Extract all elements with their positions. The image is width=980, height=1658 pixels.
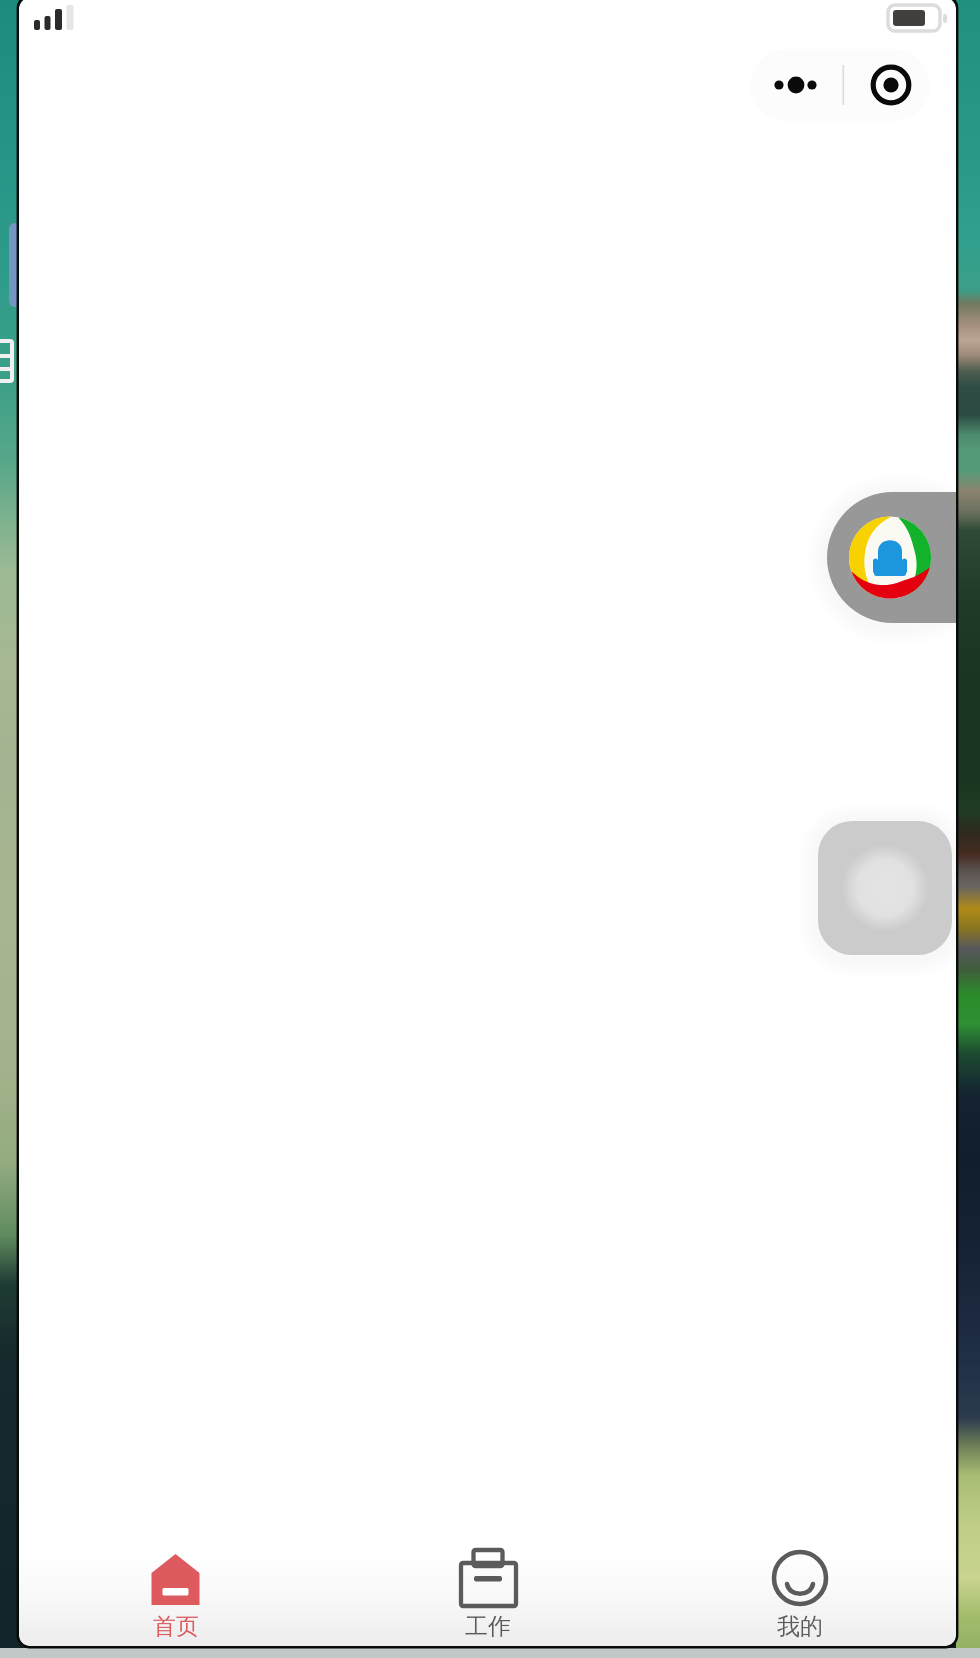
staticText: 我的 bbox=[777, 1612, 823, 1641]
button[interactable]: 首页 bbox=[19, 1544, 332, 1646]
button[interactable]: More options bbox=[750, 49, 843, 121]
button[interactable]: 我的 bbox=[644, 1544, 956, 1646]
staticText: 工作 bbox=[465, 1612, 511, 1641]
button[interactable]: Close mini program bbox=[843, 49, 930, 121]
button[interactable]: App shortcut bbox=[818, 821, 952, 955]
staticText: 首页 bbox=[153, 1612, 199, 1641]
button[interactable]: QQ Browser shortcut bbox=[827, 492, 956, 623]
button[interactable]: 工作 bbox=[332, 1544, 644, 1646]
